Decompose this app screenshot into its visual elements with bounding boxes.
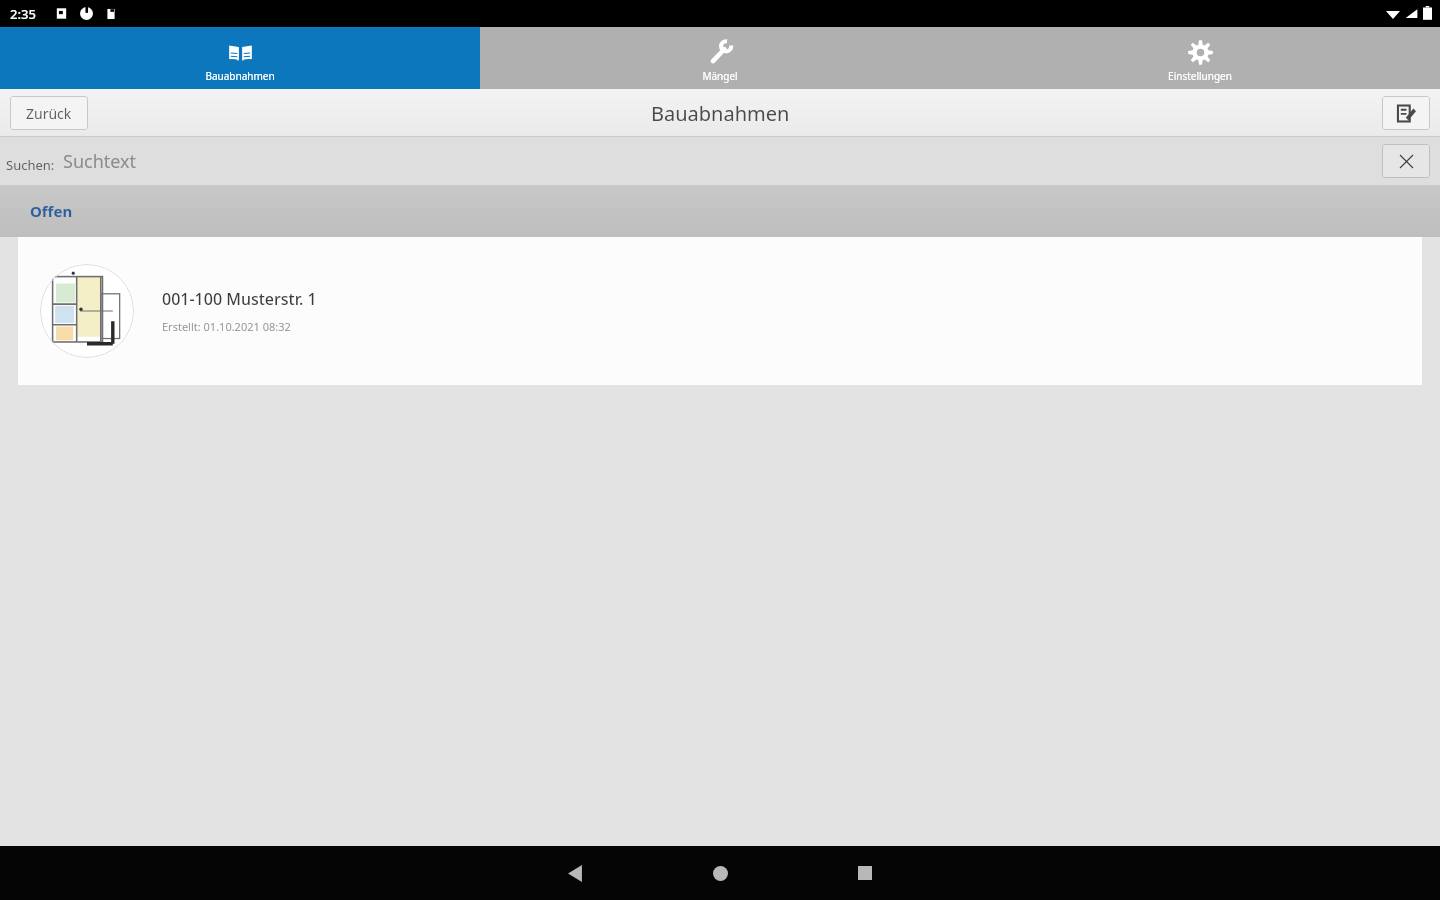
button[interactable]: Bauabnahmen [0,27,480,89]
button[interactable]: Startseite [690,846,750,900]
button[interactable]: Neue Bauabnahme [1382,96,1430,130]
button[interactable]: Übersicht [835,846,895,900]
staticText: Bauabnahmen [651,100,790,127]
button[interactable]: Zurück [10,96,88,130]
staticText: Erstellt: 01.10.2021 08:32 [162,319,291,334]
staticText: 001-100 Musterstr. 1 [162,288,317,310]
staticText: Mängel [702,69,738,83]
staticText: Zurück [26,104,72,123]
staticText: Suchtext [63,149,137,174]
button[interactable]: Zurück [545,846,605,900]
button[interactable]: Mängel [480,27,960,89]
staticText: Offen [30,201,73,221]
button[interactable]: Einstellungen [960,27,1440,89]
button[interactable]: Suche löschen [1382,144,1430,178]
staticText: Einstellungen [1168,69,1232,83]
button[interactable]: 001-100 Musterstr. 1 [18,237,1422,385]
staticText: Bauabnahmen [205,69,275,83]
staticText: Suchen: [6,156,55,174]
staticText: 2:35 [10,5,36,23]
